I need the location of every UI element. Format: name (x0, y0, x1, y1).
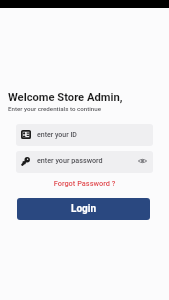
button[interactable]: Show password (134, 153, 150, 169)
button[interactable]: Forgot Password ? (0, 179, 169, 188)
staticText: enter your password (37, 156, 134, 164)
staticText: Login (71, 203, 97, 215)
button[interactable]: enter your password (16, 151, 153, 173)
button[interactable]: enter your ID (16, 124, 153, 146)
staticText: Enter your credentials to continue (8, 105, 102, 112)
staticText: Welcome Store Admin, (8, 91, 123, 104)
button[interactable]: Login (17, 198, 150, 220)
staticText: enter your ID (37, 131, 77, 139)
